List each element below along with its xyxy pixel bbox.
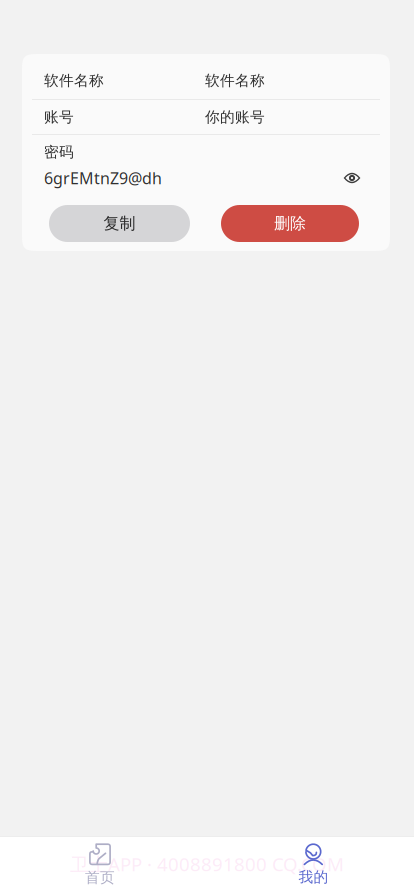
staticText: 我的 (298, 868, 328, 886)
staticText: 卫士APP · 4008891800 CQ.COM (70, 852, 344, 876)
staticText: 你的账号 (205, 108, 265, 126)
button[interactable]: 显示密码 (336, 165, 368, 191)
staticText: 软件名称 (44, 71, 104, 89)
staticText: 6grEMtnZ9@dh (44, 167, 162, 189)
button[interactable]: 首页 (0, 836, 200, 896)
staticText: 删除 (274, 214, 306, 233)
staticText: 首页 (85, 869, 115, 887)
button[interactable]: 删除 (221, 205, 359, 242)
staticText: 密码 (44, 143, 74, 161)
staticText: 账号 (44, 108, 74, 126)
staticText: 软件名称 (205, 71, 265, 89)
button[interactable]: 我的 (200, 836, 414, 896)
button[interactable]: 复制 (49, 205, 190, 242)
staticText: 复制 (103, 214, 135, 233)
